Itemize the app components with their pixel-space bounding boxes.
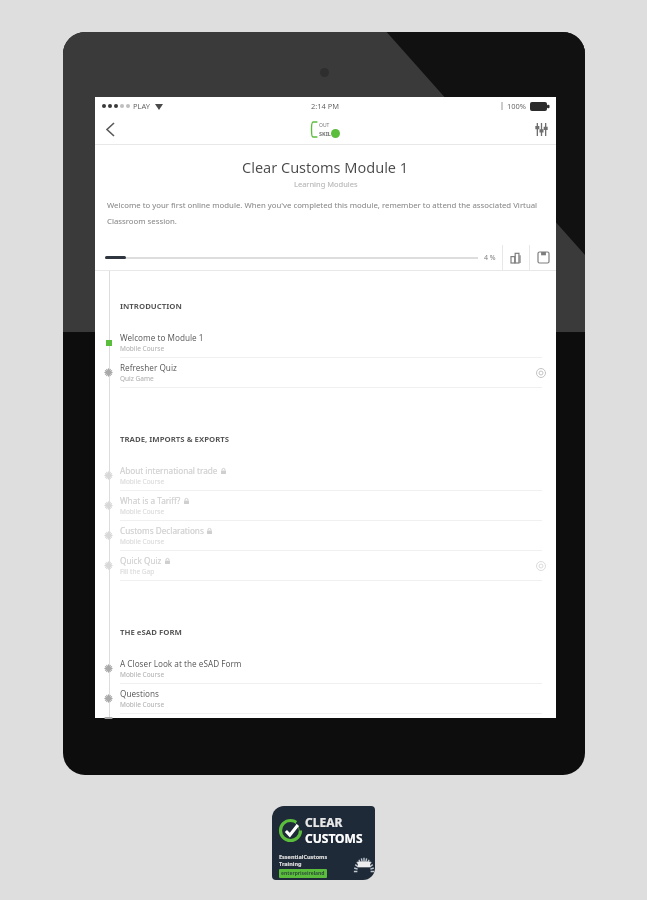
staticText: OUT	[319, 122, 330, 129]
staticText: Welcome to Module 1	[120, 332, 204, 343]
button[interactable]: Customs Declarations	[95, 521, 556, 550]
staticText: Classroom session.	[107, 216, 544, 227]
staticText: 100%	[507, 101, 527, 111]
staticText: Mobile Course	[120, 477, 165, 486]
button[interactable]: Questions	[95, 684, 556, 713]
staticText: 2:14 PM	[311, 101, 340, 111]
staticText: Mobile Course	[120, 670, 165, 679]
staticText: THE eSAD FORM	[120, 627, 556, 638]
button[interactable]: About international trade	[95, 461, 556, 490]
button[interactable]: Refresher Quiz	[95, 358, 556, 387]
button[interactable]: Back	[95, 114, 125, 144]
staticText: Mobile Course	[120, 700, 165, 709]
staticText: CLEAR	[305, 814, 343, 830]
button[interactable]: What is a Tariff?	[95, 491, 556, 520]
staticText: Questions	[120, 688, 159, 699]
staticText: CUSTOMS	[305, 830, 363, 846]
staticText: Learning Modules	[294, 179, 358, 189]
staticText: Training	[279, 860, 302, 867]
staticText: Mobile Course	[120, 344, 165, 353]
staticText: SKIL	[319, 130, 331, 137]
staticText: PLAY	[133, 101, 151, 111]
staticText: Fill the Gap	[120, 567, 155, 576]
staticText: Welcome to your first online module. Whe…	[107, 200, 544, 211]
button[interactable]: Options	[526, 551, 556, 580]
staticText: Clear Customs Module 1	[242, 157, 409, 177]
button[interactable]: Statistics	[503, 245, 529, 270]
staticText: Refresher Quiz	[120, 362, 177, 373]
staticText: 4 %	[484, 253, 496, 263]
staticText: What is a Tariff?	[120, 495, 181, 506]
button[interactable]: Quick Quiz	[95, 551, 556, 580]
button[interactable]: Filter	[526, 114, 556, 144]
staticText: About international trade	[120, 465, 218, 476]
staticText: Quick Quiz	[120, 555, 162, 566]
staticText: Quiz Game	[120, 374, 154, 383]
button[interactable]: Resources	[530, 245, 556, 270]
staticText: Mobile Course	[120, 507, 165, 516]
staticText: TRADE, IMPORTS & EXPORTS	[120, 434, 556, 445]
button[interactable]: Options	[526, 358, 556, 387]
staticText: INTRODUCTION	[120, 301, 556, 312]
staticText: A Closer Look at the eSAD Form	[120, 658, 242, 669]
button[interactable]: Welcome to Module 1	[95, 328, 556, 357]
staticText: Mobile Course	[120, 537, 165, 546]
staticText: enterpriseireland	[281, 870, 325, 877]
button[interactable]: A Closer Look at the eSAD Form	[95, 654, 556, 683]
staticText: EssentialCustoms	[279, 853, 328, 860]
staticText: Customs Declarations	[120, 525, 204, 536]
button[interactable]: Clear Customs badge	[272, 806, 375, 880]
